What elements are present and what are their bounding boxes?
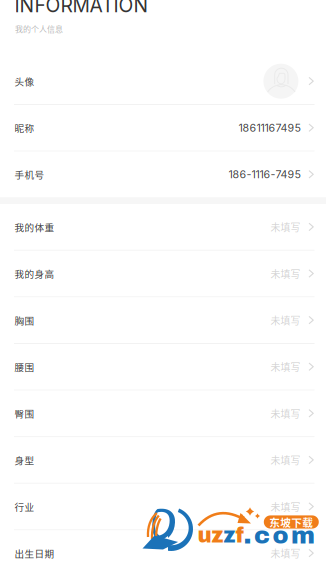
staticText: INFORMATION [14,0,148,17]
button[interactable]: 手机号 [0,152,326,197]
staticText: 未填写 [270,406,300,421]
button[interactable]: 腰围 [0,344,326,390]
staticText: 我的个人信息 [15,23,63,34]
staticText: 昵称 [14,121,34,135]
button[interactable]: 臀围 [0,391,326,436]
staticText: 行业 [14,500,34,513]
staticText: z [223,524,235,547]
staticText: 我的身高 [14,267,54,280]
staticText: 18611167495 [238,121,300,134]
staticText: 未填写 [270,220,300,234]
button[interactable]: 我的身高 [0,251,326,296]
staticText: 未填写 [270,360,300,374]
staticText: f [235,524,243,547]
button[interactable]: 胸围 [0,297,326,343]
button[interactable]: 头像 [0,58,326,104]
staticText: 未填写 [270,313,300,327]
button[interactable]: 我的体重 [0,204,326,250]
staticText: 头像 [14,74,34,88]
staticText: 东坡下载 [269,514,313,530]
button[interactable]: 出生日期 [0,530,326,567]
staticText: 出生日期 [14,546,54,560]
staticText: 未填写 [270,266,300,281]
staticText: 手机号 [14,167,44,181]
staticText: 未填写 [270,453,300,467]
button[interactable]: 行业 [0,484,326,529]
staticText: 未填写 [270,546,300,560]
staticText: .com [243,522,315,549]
staticText: 186-1116-7495 [228,168,300,181]
staticText: 我的体重 [14,220,54,234]
staticText: uz [197,524,223,547]
button[interactable]: 身型 [0,437,326,483]
staticText: 胸围 [14,313,34,327]
button[interactable]: 昵称 [0,105,326,151]
staticText: 腰围 [14,360,34,374]
staticText: 身型 [14,453,34,467]
staticText: 臀围 [14,406,34,420]
staticText: 未填写 [270,499,300,514]
